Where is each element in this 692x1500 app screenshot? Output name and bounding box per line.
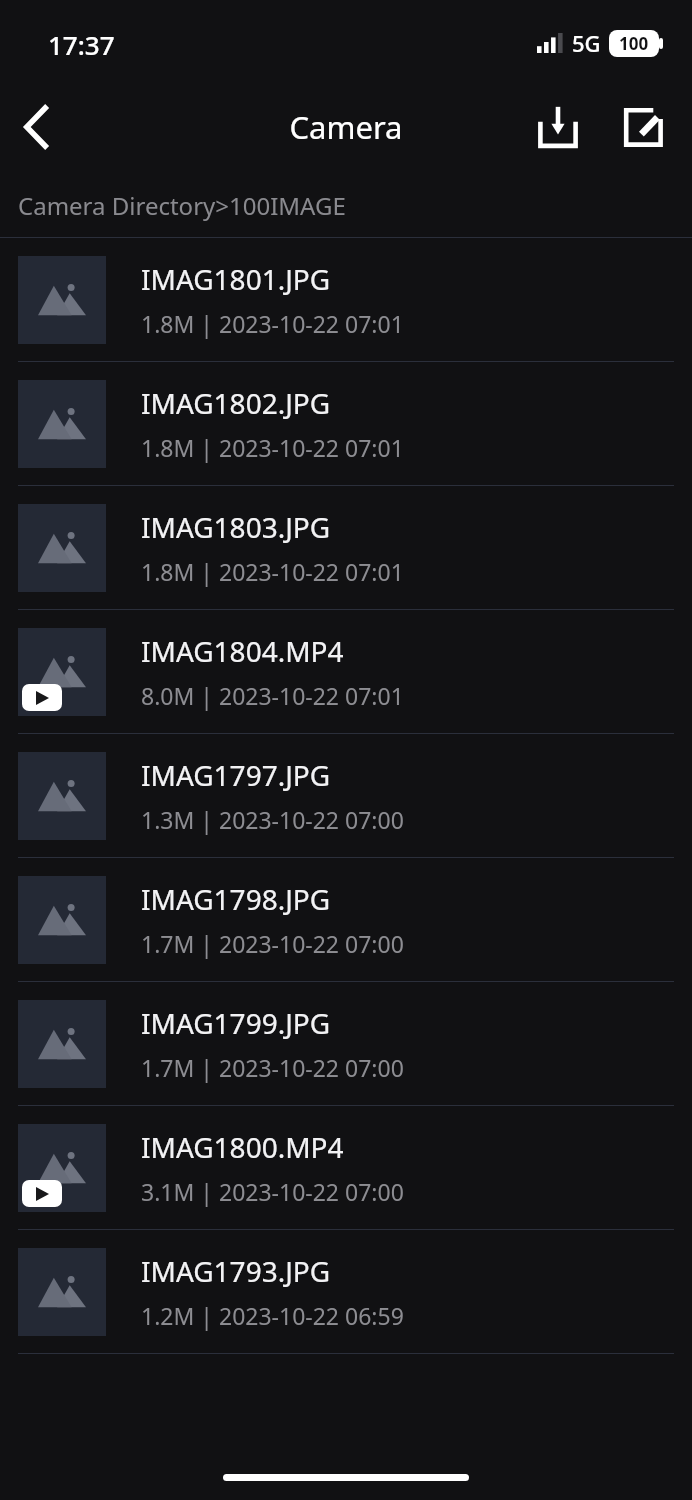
staticText: 1.8M | 2023-10-22 07:01 bbox=[141, 308, 404, 339]
button[interactable]: IMAG1801.JPG bbox=[0, 238, 692, 361]
staticText: IMAG1804.MP4 bbox=[141, 632, 344, 670]
staticText: 3.1M | 2023-10-22 07:00 bbox=[141, 1176, 404, 1207]
staticText: IMAG1800.MP4 bbox=[141, 1128, 344, 1166]
staticText: 5G bbox=[572, 28, 601, 58]
staticText: IMAG1793.JPG bbox=[141, 1252, 331, 1290]
staticText: 100 bbox=[619, 32, 649, 55]
staticText: IMAG1802.JPG bbox=[141, 384, 331, 422]
staticText: 1.7M | 2023-10-22 07:00 bbox=[141, 928, 404, 959]
staticText: 1.3M | 2023-10-22 07:00 bbox=[141, 804, 404, 835]
button[interactable]: IMAG1803.JPG bbox=[0, 486, 692, 609]
button[interactable]: IMAG1799.JPG bbox=[0, 982, 692, 1105]
button[interactable]: IMAG1802.JPG bbox=[0, 362, 692, 485]
button[interactable]: Download bbox=[527, 96, 589, 158]
staticText: Camera Directory>100IMAGE bbox=[18, 189, 346, 222]
button[interactable]: Back bbox=[0, 91, 72, 163]
button[interactable]: IMAG1797.JPG bbox=[0, 734, 692, 857]
button[interactable]: IMAG1798.JPG bbox=[0, 858, 692, 981]
staticText: 1.8M | 2023-10-22 07:01 bbox=[141, 556, 404, 587]
staticText: 1.7M | 2023-10-22 07:00 bbox=[141, 1052, 404, 1083]
staticText: IMAG1803.JPG bbox=[141, 508, 331, 546]
staticText: 1.2M | 2023-10-22 06:59 bbox=[141, 1300, 404, 1331]
staticText: 17:37 bbox=[48, 27, 115, 62]
button[interactable]: Edit bbox=[612, 96, 674, 158]
button[interactable]: IMAG1804.MP4 bbox=[0, 610, 692, 733]
button[interactable]: IMAG1793.JPG bbox=[0, 1230, 692, 1353]
staticText: 8.0M | 2023-10-22 07:01 bbox=[141, 680, 404, 711]
staticText: IMAG1798.JPG bbox=[141, 880, 331, 918]
staticText: IMAG1799.JPG bbox=[141, 1004, 331, 1042]
button[interactable]: IMAG1800.MP4 bbox=[0, 1106, 692, 1229]
staticText: Camera bbox=[289, 106, 403, 148]
staticText: 1.8M | 2023-10-22 07:01 bbox=[141, 432, 404, 463]
staticText: IMAG1797.JPG bbox=[141, 756, 331, 794]
staticText: IMAG1801.JPG bbox=[141, 260, 331, 298]
